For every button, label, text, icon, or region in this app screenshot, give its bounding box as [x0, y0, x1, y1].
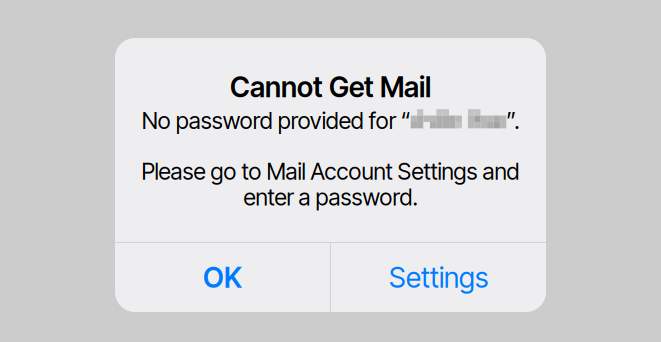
staticText: No password provided for “ [142, 107, 411, 135]
button[interactable]: OK [115, 243, 330, 312]
staticText: ”. [506, 107, 519, 135]
button[interactable]: Settings [331, 243, 546, 312]
staticText: OK [203, 261, 242, 294]
staticText: Cannot Get Mail [230, 70, 431, 104]
staticText: Settings [389, 261, 488, 294]
staticText: enter a password. [243, 183, 417, 211]
staticText: Please go to Mail Account Settings and [141, 158, 519, 185]
